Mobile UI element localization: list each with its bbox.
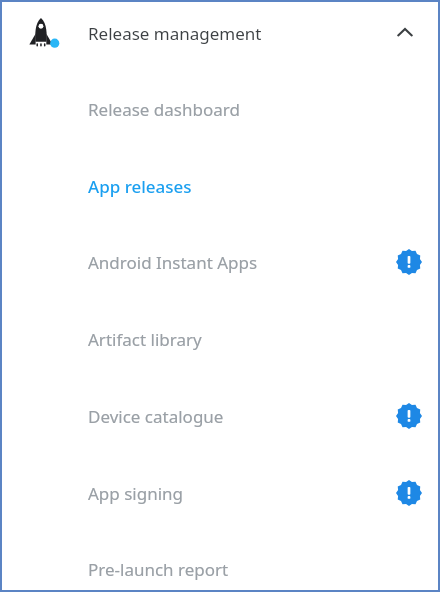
button[interactable]: Release management [0, 0, 440, 66]
other: Action required [396, 403, 422, 429]
other: Collapse section [385, 13, 425, 53]
button[interactable]: Release dashboard [0, 81, 440, 137]
button[interactable]: Android Instant Apps [0, 234, 440, 290]
button[interactable]: Device catalogue [0, 388, 440, 444]
button[interactable]: App signing [0, 465, 440, 521]
staticText: App signing [88, 482, 184, 505]
button[interactable]: Artifact library [0, 311, 440, 367]
staticText: Release management [88, 22, 262, 45]
staticText: Pre-launch report [88, 558, 229, 581]
other: Action required [396, 249, 422, 275]
staticText: Device catalogue [88, 405, 224, 428]
button[interactable]: App releases [0, 158, 440, 214]
staticText: App releases [88, 175, 192, 198]
staticText: Release dashboard [88, 98, 240, 121]
button[interactable]: Pre-launch report [0, 541, 440, 592]
staticText: Android Instant Apps [88, 251, 258, 274]
other: Action required [396, 480, 422, 506]
other: Release management [26, 16, 60, 50]
staticText: Artifact library [88, 328, 202, 351]
